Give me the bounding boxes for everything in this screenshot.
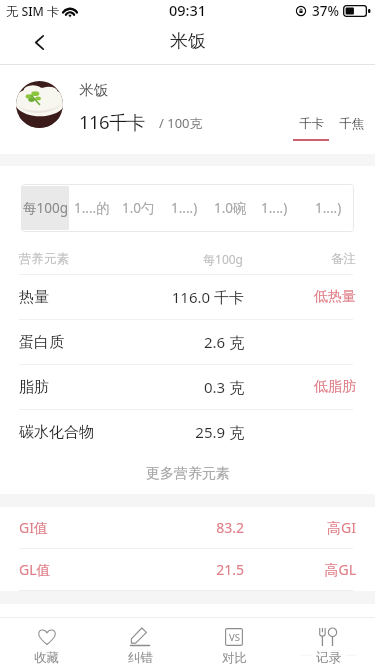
staticText: 2.6 克 <box>124 332 244 352</box>
staticText: 1....) <box>171 199 198 217</box>
staticText: 25.9 克 <box>124 422 244 442</box>
staticText: 1.0碗 <box>214 199 247 217</box>
staticText: 无 SIM 卡 <box>6 3 60 20</box>
staticText: 千卡 <box>299 116 324 132</box>
staticText: 纠错 <box>128 650 153 666</box>
button[interactable]: 收藏 <box>0 618 93 667</box>
staticText: 1.0勺 <box>122 199 155 217</box>
button[interactable]: 1....) <box>253 186 295 230</box>
button[interactable]: 每100g <box>21 186 69 230</box>
button[interactable]: 记录 <box>281 618 375 667</box>
staticText: 蛋白质 <box>19 333 124 352</box>
staticText: 高GI <box>284 518 356 537</box>
staticText: 热量 <box>19 288 124 307</box>
staticText: 116.0 千卡 <box>124 287 244 307</box>
staticText: 一记录一 <box>299 647 359 663</box>
button[interactable]: 千卡 <box>288 116 334 141</box>
staticText: 千焦 <box>339 116 364 132</box>
staticText: 米饭 <box>170 30 206 53</box>
staticText: 每100g <box>124 251 243 267</box>
staticText: / 100克 <box>159 114 203 132</box>
staticText: 09:31 <box>169 0 207 20</box>
staticText: 83.2 <box>124 518 244 537</box>
staticText: 1....的 <box>74 199 110 217</box>
button[interactable]: VS <box>187 618 281 667</box>
staticText: 低热量 <box>284 288 356 306</box>
staticText: 1....) <box>315 199 342 217</box>
button[interactable]: 千焦 <box>334 116 369 132</box>
staticText: 1....) <box>261 199 288 217</box>
button[interactable]: 纠错 <box>93 618 187 667</box>
staticText: 收藏 <box>34 650 59 666</box>
staticText: 记录 <box>316 650 341 666</box>
button[interactable]: 1....) <box>162 186 207 230</box>
button[interactable]: 1.0碗 <box>207 186 253 230</box>
staticText: 低脂肪 <box>284 378 356 396</box>
staticText: 37% <box>312 2 339 20</box>
button[interactable]: 更多营养元素 <box>0 454 375 494</box>
staticText: 碳水化合物 <box>19 423 124 442</box>
staticText: VS <box>229 631 240 644</box>
staticText: 更多营养元素 <box>146 465 230 483</box>
staticText: 0.3 克 <box>124 377 244 397</box>
button[interactable]: Back <box>23 26 56 59</box>
staticText: 对比 <box>222 650 247 666</box>
staticText: GI值 <box>19 518 124 537</box>
staticText: 备注 <box>284 251 356 267</box>
staticText: 高GL <box>284 560 356 579</box>
staticText: 脂肪 <box>19 378 124 397</box>
staticText: 每100g <box>23 199 68 217</box>
staticText: 米饭 <box>79 81 108 99</box>
button[interactable]: 1.0勺 <box>115 186 162 230</box>
button[interactable]: 1....的 <box>69 186 115 230</box>
staticText: 116千卡 <box>79 109 145 134</box>
button[interactable]: 1....) <box>302 186 354 230</box>
staticText: 营养元素 <box>19 251 124 267</box>
staticText: GL值 <box>19 560 124 579</box>
staticText: 21.5 <box>124 560 244 579</box>
